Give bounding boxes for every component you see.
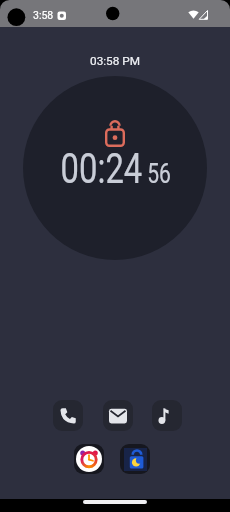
staticText: 00:24 (61, 144, 142, 193)
button[interactable] (103, 400, 133, 431)
staticText: 56 (147, 158, 171, 190)
staticText: 3:58 (33, 9, 54, 21)
button[interactable] (53, 400, 83, 431)
staticText: 03:58 PM (90, 54, 141, 68)
button[interactable] (120, 444, 150, 474)
button[interactable] (152, 400, 182, 431)
button[interactable] (74, 444, 104, 474)
